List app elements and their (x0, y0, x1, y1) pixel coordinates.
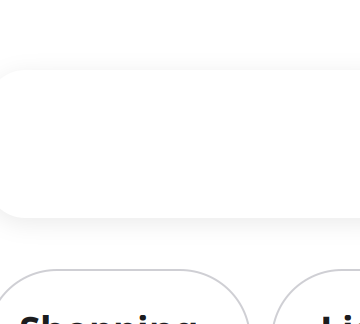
button[interactable]: Shopping (0, 270, 250, 324)
staticText: Lists (320, 304, 360, 324)
button[interactable]: Lists (272, 270, 360, 324)
staticText: Shopping (19, 304, 198, 324)
